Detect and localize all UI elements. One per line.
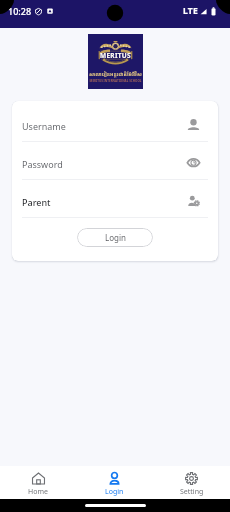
button[interactable]: Login — [77, 228, 153, 247]
staticText: Password — [22, 158, 63, 170]
staticText: Login — [105, 232, 126, 243]
staticText: Home — [28, 487, 48, 497]
staticText: Username — [22, 120, 66, 132]
button[interactable]: Setting — [153, 466, 230, 499]
staticText: MERITUS — [100, 51, 131, 60]
staticText: Login — [105, 487, 124, 497]
button[interactable]: Password — [12, 142, 218, 179]
staticText: MERITUS INTERNATIONAL SCHOOL — [88, 79, 143, 83]
staticText: សាលារៀនអន្តរជាតិម៉ែរីទឺស — [88, 71, 143, 78]
button[interactable]: Username — [12, 104, 218, 141]
button[interactable]: Login — [76, 466, 153, 499]
button[interactable]: Parent — [12, 180, 218, 217]
staticText: Setting — [180, 487, 204, 497]
staticText: Parent — [22, 196, 51, 208]
staticText: 10:28 — [8, 5, 32, 17]
staticText: LTE — [183, 5, 198, 17]
button[interactable]: Home — [0, 466, 76, 499]
